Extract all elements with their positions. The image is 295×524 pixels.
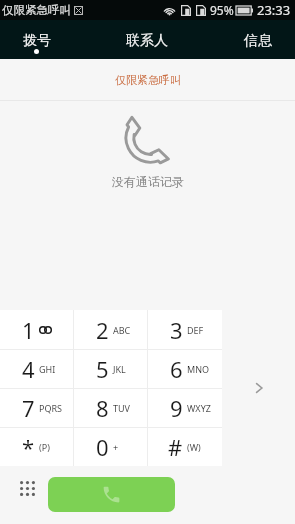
- staticText: 1: [22, 315, 35, 345]
- staticText: 仅限紧急呼叫: [115, 73, 181, 87]
- staticText: 联系人: [126, 32, 168, 50]
- button[interactable]: 联系人: [110, 20, 184, 59]
- staticText: 5: [96, 354, 109, 384]
- staticText: 0: [96, 432, 109, 462]
- button[interactable]: 5: [74, 350, 148, 388]
- button[interactable]: 信息: [221, 20, 295, 59]
- button[interactable]: #: [148, 428, 222, 466]
- staticText: 95%: [210, 2, 234, 18]
- staticText: 没有通话记录: [112, 174, 184, 189]
- staticText: ABC: [113, 324, 131, 336]
- button[interactable]: 1: [0, 310, 74, 349]
- button[interactable]: 拨号: [0, 20, 73, 59]
- staticText: 2: [96, 315, 109, 345]
- staticText: 信息: [244, 32, 272, 50]
- staticText: (P): [39, 441, 50, 453]
- staticText: 4: [22, 354, 35, 384]
- button[interactable]: Expand: [222, 310, 295, 466]
- staticText: 3: [170, 315, 183, 345]
- staticText: 9: [170, 393, 183, 423]
- button[interactable]: 6: [148, 350, 222, 388]
- button[interactable]: 4: [0, 350, 74, 388]
- button[interactable]: 3: [148, 310, 222, 349]
- staticText: GHI: [39, 363, 56, 375]
- staticText: +: [113, 441, 119, 453]
- staticText: TUV: [113, 402, 130, 414]
- staticText: 23:33: [257, 1, 291, 19]
- staticText: 8: [96, 393, 109, 423]
- button[interactable]: 7: [0, 389, 74, 427]
- staticText: 仅限紧急呼叫: [2, 3, 71, 17]
- button[interactable]: Keypad: [13, 474, 41, 502]
- staticText: 拨号: [23, 32, 51, 50]
- staticText: MNO: [187, 363, 210, 375]
- staticText: JKL: [113, 363, 126, 375]
- button[interactable]: 8: [74, 389, 148, 427]
- staticText: (W): [187, 441, 201, 453]
- button[interactable]: Call: [48, 477, 175, 512]
- button[interactable]: 0: [74, 428, 148, 466]
- button[interactable]: 9: [148, 389, 222, 427]
- button[interactable]: *: [0, 428, 74, 466]
- staticText: WXYZ: [187, 402, 211, 414]
- staticText: 6: [170, 354, 183, 384]
- staticText: *: [22, 432, 35, 462]
- staticText: 7: [22, 393, 35, 423]
- button[interactable]: 2: [74, 310, 148, 349]
- staticText: PQRS: [39, 402, 63, 414]
- staticText: #: [168, 432, 183, 462]
- staticText: DEF: [187, 324, 204, 336]
